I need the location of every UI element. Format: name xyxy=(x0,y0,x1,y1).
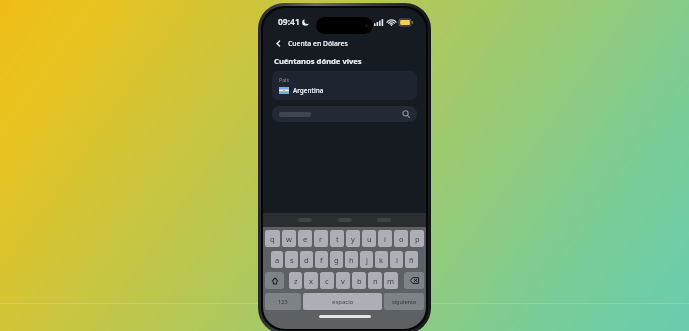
staticText: Cuenta en Dólares xyxy=(288,39,348,48)
button[interactable]: Backspace xyxy=(404,272,424,289)
staticText: f xyxy=(320,255,323,265)
staticText: 123 xyxy=(278,298,288,306)
staticText: y xyxy=(351,234,355,244)
staticText: n xyxy=(373,276,378,286)
button[interactable]: v xyxy=(336,272,350,289)
staticText: w xyxy=(286,234,292,244)
button[interactable]: o xyxy=(394,230,408,247)
staticText: q xyxy=(270,234,275,244)
button[interactable]: k xyxy=(375,251,388,268)
button[interactable]: Back xyxy=(272,37,285,50)
button[interactable]: h xyxy=(345,251,358,268)
staticText: siguiente xyxy=(392,298,417,306)
button[interactable]: e xyxy=(298,230,312,247)
staticText: m xyxy=(387,276,395,286)
button[interactable]: b xyxy=(352,272,366,289)
staticText: k xyxy=(379,255,384,265)
button[interactable]: n xyxy=(368,272,382,289)
button[interactable]: l xyxy=(390,251,403,268)
button[interactable]: w xyxy=(282,230,296,247)
staticText: v xyxy=(341,276,345,286)
button[interactable]: r xyxy=(314,230,328,247)
staticText: Argentina xyxy=(293,86,324,95)
button[interactable]: ñ xyxy=(405,251,418,268)
staticText: x xyxy=(309,276,313,286)
button[interactable]: 123 xyxy=(265,293,301,310)
button[interactable]: j xyxy=(360,251,373,268)
button[interactable]: z xyxy=(289,272,302,289)
button[interactable]: Search xyxy=(272,106,417,122)
staticText: d xyxy=(304,255,309,265)
staticText: a xyxy=(275,255,280,265)
button[interactable]: i xyxy=(378,230,392,247)
staticText: ñ xyxy=(409,255,414,265)
staticText: País xyxy=(279,76,289,83)
staticText: e xyxy=(303,234,308,244)
staticText: g xyxy=(334,255,339,265)
button[interactable]: siguiente xyxy=(384,293,424,310)
staticText: h xyxy=(349,255,354,265)
staticText: b xyxy=(357,276,362,286)
staticText: p xyxy=(415,234,420,244)
staticText: c xyxy=(325,276,329,286)
other: Search xyxy=(402,110,410,118)
staticText: Cuéntanos dónde vives xyxy=(274,56,362,66)
staticText: i xyxy=(384,234,386,244)
staticText: s xyxy=(290,255,294,265)
staticText: t xyxy=(336,234,339,244)
staticText: j xyxy=(366,255,368,265)
button[interactable]: t xyxy=(330,230,344,247)
button[interactable]: d xyxy=(300,251,313,268)
button[interactable]: p xyxy=(410,230,424,247)
button[interactable]: g xyxy=(330,251,343,268)
button[interactable]: c xyxy=(320,272,334,289)
button[interactable]: s xyxy=(285,251,298,268)
staticText: r xyxy=(319,234,323,244)
button[interactable]: Back xyxy=(263,34,426,52)
button[interactable]: País xyxy=(272,71,417,100)
button[interactable]: f xyxy=(315,251,328,268)
staticText: l xyxy=(396,255,398,265)
button[interactable]: q xyxy=(265,230,280,247)
button[interactable]: a xyxy=(271,251,283,268)
staticText: u xyxy=(367,234,372,244)
staticText: espacio xyxy=(332,298,354,306)
button[interactable]: y xyxy=(346,230,360,247)
staticText: z xyxy=(294,276,298,286)
button[interactable]: u xyxy=(362,230,376,247)
button[interactable]: x xyxy=(304,272,318,289)
button[interactable]: m xyxy=(384,272,398,289)
button[interactable]: espacio xyxy=(303,293,382,310)
staticText: o xyxy=(399,234,404,244)
button[interactable]: Shift xyxy=(265,272,284,289)
staticText: 09:41 xyxy=(278,16,300,28)
